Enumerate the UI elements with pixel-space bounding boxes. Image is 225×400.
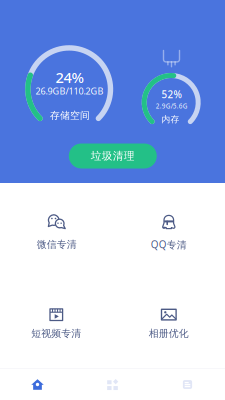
button[interactable]: QQ专清 bbox=[0, 0, 225, 400]
staticText: 2.9G/5.6G bbox=[156, 102, 188, 110]
button[interactable]: 微信专清 bbox=[0, 0, 225, 400]
button[interactable]: Discover bbox=[150, 369, 225, 400]
button[interactable]: 相册优化 bbox=[0, 0, 225, 400]
staticText: 24% bbox=[55, 67, 83, 87]
staticText: QQ专清 bbox=[151, 238, 187, 251]
button[interactable]: Tools bbox=[75, 369, 150, 400]
button[interactable]: Home bbox=[0, 369, 75, 400]
staticText: 内存 bbox=[161, 114, 179, 125]
staticText: 微信专清 bbox=[37, 238, 77, 251]
button[interactable]: 短视频专清 bbox=[0, 0, 225, 400]
staticText: 26.9GB/110.2GB bbox=[35, 85, 103, 97]
staticText: 相册优化 bbox=[149, 327, 189, 340]
staticText: 存储空间 bbox=[50, 109, 90, 122]
button[interactable]: 垃圾清理 bbox=[69, 143, 157, 168]
staticText: 垃圾清理 bbox=[91, 149, 135, 163]
staticText: 短视频专清 bbox=[31, 327, 81, 340]
staticText: 52% bbox=[162, 88, 182, 101]
